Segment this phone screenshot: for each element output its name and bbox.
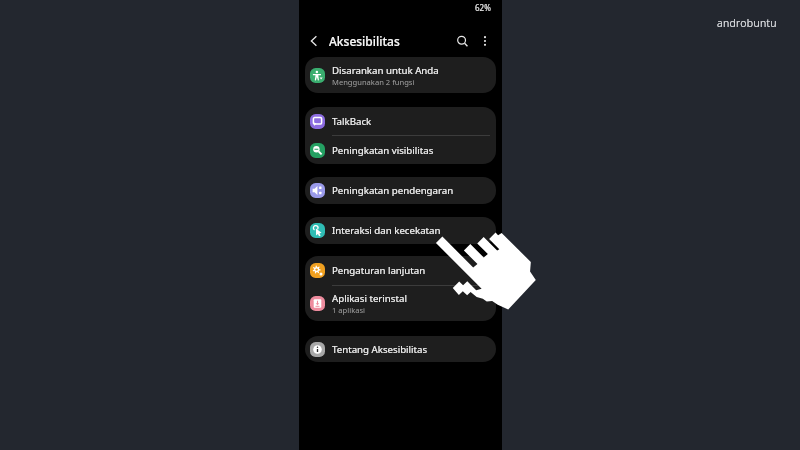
button[interactable]: More options xyxy=(475,31,495,51)
button[interactable]: Pengaturan lanjutan xyxy=(305,256,496,285)
button[interactable]: Back xyxy=(299,27,328,55)
staticText: Peningkatan pendengaran xyxy=(332,184,454,197)
button[interactable]: Aplikasi terinstal xyxy=(305,286,496,321)
staticText: androbuntu xyxy=(717,16,777,30)
button[interactable]: TalkBack xyxy=(305,107,496,135)
button[interactable]: Search xyxy=(449,28,475,54)
staticText: Interaksi dan kecekatan xyxy=(332,224,441,237)
staticText: Menggunakan 2 fungsi xyxy=(332,77,415,87)
staticText: Disarankan untuk Anda xyxy=(332,64,439,77)
staticText: Tentang Aksesibilitas xyxy=(332,343,428,356)
staticText: Peningkatan visibilitas xyxy=(332,144,434,157)
button[interactable]: Peningkatan pendengaran xyxy=(305,177,496,204)
button[interactable]: Tentang Aksesibilitas xyxy=(305,336,496,362)
button[interactable]: Peningkatan visibilitas xyxy=(305,136,496,164)
button[interactable]: Interaksi dan kecekatan xyxy=(305,217,496,244)
staticText: Aplikasi terinstal xyxy=(332,292,407,305)
button[interactable]: Disarankan untuk Anda xyxy=(305,57,496,93)
staticText: 62% xyxy=(475,2,491,13)
staticText: Aksesibilitas xyxy=(329,33,400,49)
staticText: TalkBack xyxy=(332,115,372,128)
staticText: 1 aplikasi xyxy=(332,305,366,315)
staticText: Pengaturan lanjutan xyxy=(332,264,426,277)
